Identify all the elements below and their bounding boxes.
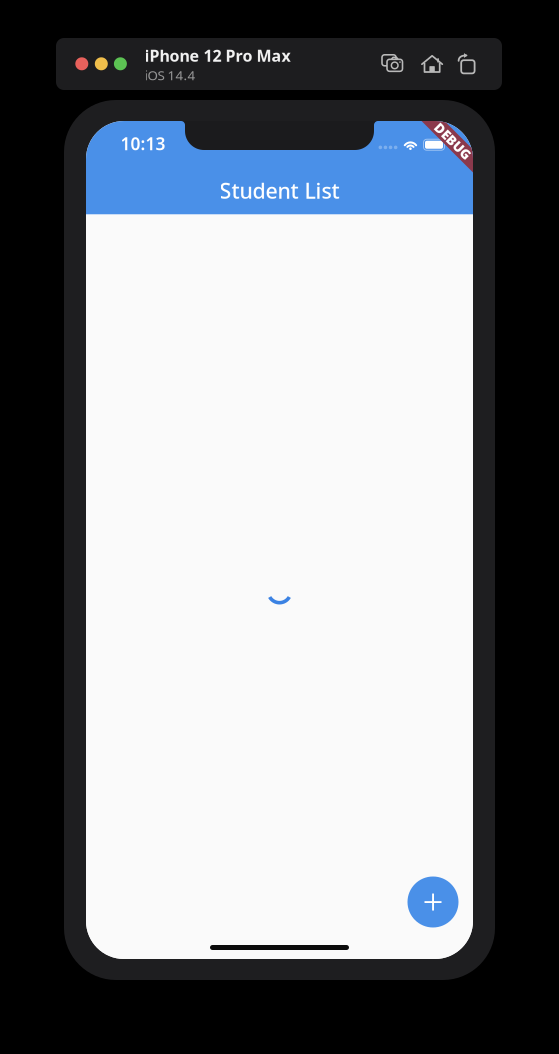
staticText: iPhone 12 Pro Max bbox=[144, 45, 290, 66]
button[interactable]: Zoom bbox=[114, 57, 127, 70]
staticText: iOS 14.4 bbox=[144, 66, 195, 84]
staticText: Student List bbox=[219, 176, 339, 205]
button[interactable]: Rotate bbox=[457, 53, 475, 73]
button[interactable]: Minimise bbox=[95, 57, 108, 70]
button[interactable]: Screenshot bbox=[381, 53, 403, 73]
staticText: DEBUG bbox=[430, 132, 476, 150]
button[interactable]: Add student bbox=[407, 876, 458, 927]
button[interactable]: Close bbox=[75, 57, 88, 70]
staticText: 10:13 bbox=[120, 132, 165, 155]
button[interactable]: Home bbox=[421, 54, 440, 72]
